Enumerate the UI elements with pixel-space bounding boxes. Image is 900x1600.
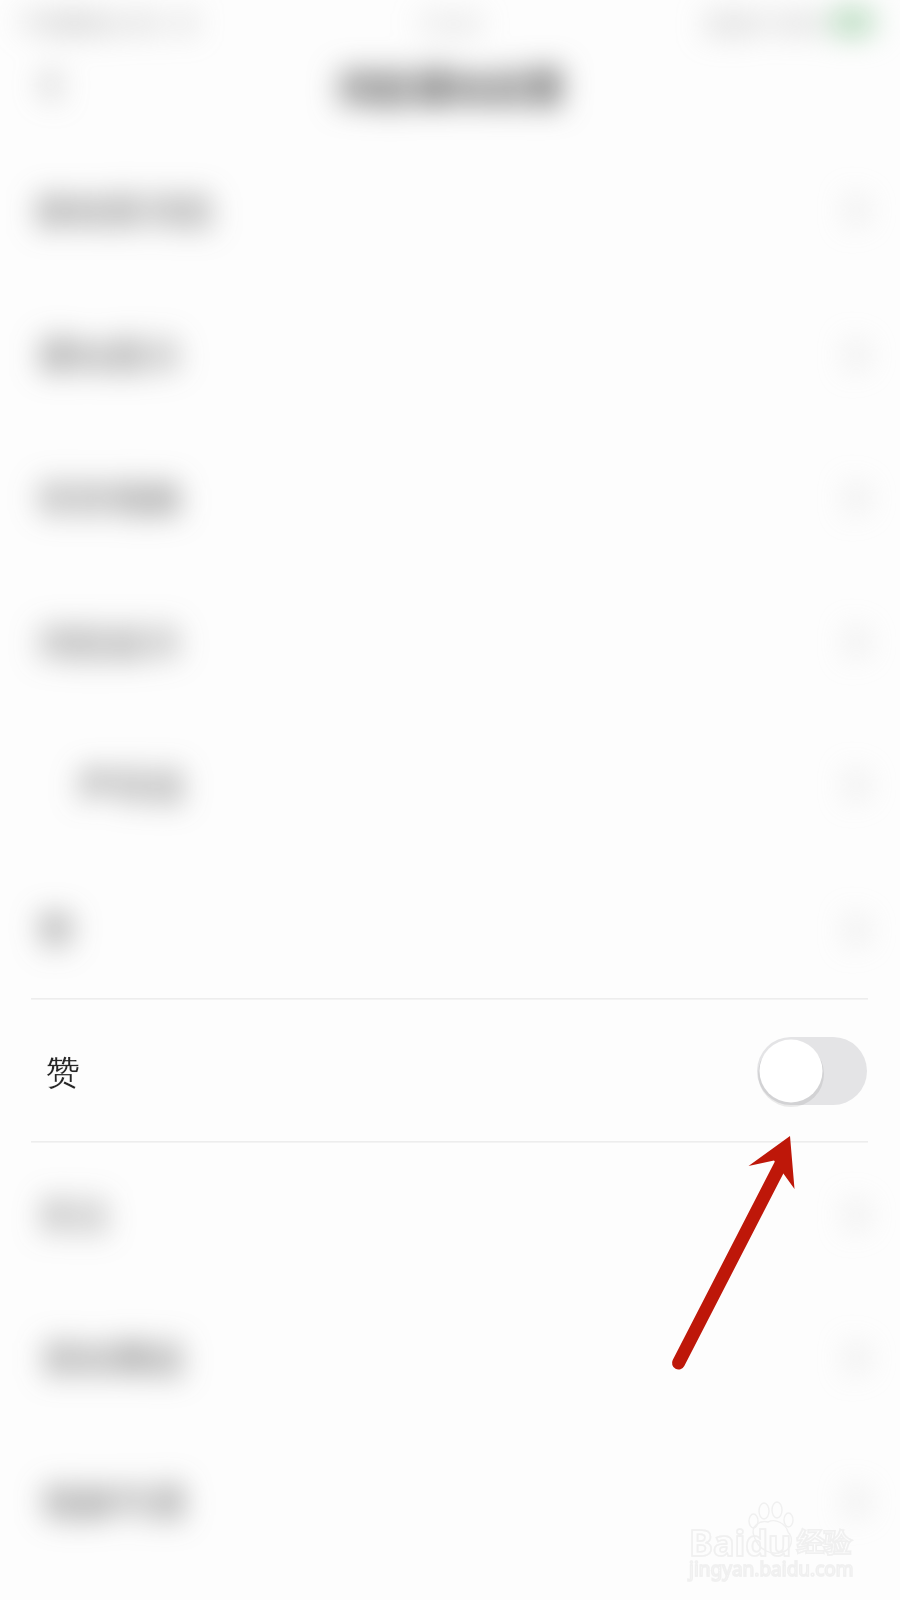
button[interactable]: 朋友圈提 [0, 1287, 900, 1429]
staticText: 消息通知设置 [336, 65, 564, 113]
button[interactable]: 返回 [16, 49, 88, 121]
button[interactable]: 关注 [0, 1144, 900, 1286]
staticText: 视频号通 [42, 1480, 186, 1525]
button[interactable]: 赞 通知开关，已关闭 [757, 1037, 867, 1105]
staticText: 经验 [797, 1526, 851, 1560]
button[interactable]: 视频号通 [0, 1431, 900, 1573]
button[interactable]: 声音提 [0, 714, 900, 856]
staticText: 消息提示 [37, 620, 181, 665]
button[interactable]: 赞 [0, 859, 900, 1001]
staticText: 朋友圈提 [42, 1336, 186, 1381]
staticText: 中国移动 4G ıIl [22, 5, 196, 39]
staticText: 关注 [38, 1193, 110, 1238]
staticText: 赞 [46, 1051, 80, 1094]
button[interactable]: 接收新消息 [0, 139, 900, 281]
button[interactable]: 赞 [0, 1000, 900, 1141]
staticText: 声音提 [78, 763, 186, 808]
staticText: 赞 [38, 908, 74, 953]
staticText: jingyan.baidu.com [689, 1556, 854, 1582]
staticText: 语音视频 [37, 476, 181, 521]
button[interactable]: 通知显示 [0, 284, 900, 426]
button[interactable]: 消息提示 [0, 571, 900, 713]
staticText: 通知显示 [37, 333, 181, 378]
staticText: 接收新消息 [35, 188, 215, 233]
button[interactable]: 语音视频 [0, 427, 900, 569]
staticText: Baidu [689, 1518, 792, 1567]
